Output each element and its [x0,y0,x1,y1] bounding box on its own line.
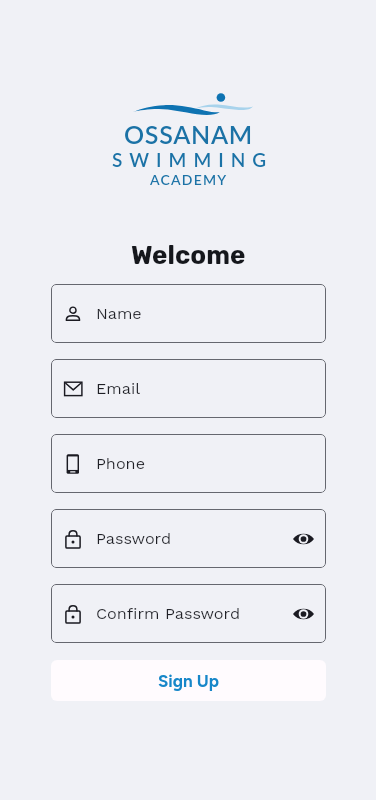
button[interactable]: Phone [51,434,326,493]
staticText: Name [96,304,142,323]
button[interactable]: Show password [290,526,316,552]
button[interactable]: Show password [290,601,316,627]
staticText: SWIMMING [112,148,274,171]
staticText: Password [96,529,172,548]
button[interactable]: Name [51,284,326,343]
staticText: ACADEMY [150,171,228,188]
button[interactable]: Sign Up [51,660,326,701]
button[interactable]: Password [51,509,326,568]
staticText: Email [96,379,141,398]
staticText: Sign Up [158,671,219,691]
staticText: Phone [96,454,145,473]
staticText: OSSANAM [124,119,253,149]
staticText: Confirm Password [96,604,241,623]
staticText: Welcome [131,240,246,271]
button[interactable]: Email [51,359,326,418]
button[interactable]: Confirm Password [51,584,326,643]
